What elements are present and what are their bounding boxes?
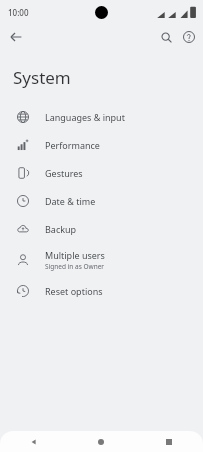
button[interactable]: Search xyxy=(156,27,176,47)
button[interactable]: Multiple users xyxy=(0,243,203,277)
staticText: Languages & input xyxy=(45,111,125,123)
button[interactable]: Backup xyxy=(0,215,203,243)
button[interactable]: Date & time xyxy=(0,187,203,215)
staticText: Signed in as Owner xyxy=(45,262,105,271)
button[interactable]: Help xyxy=(179,27,199,47)
staticText: Reset options xyxy=(45,285,103,297)
staticText: 10:00 xyxy=(8,7,29,18)
staticText: Backup xyxy=(45,223,77,235)
staticText: Performance xyxy=(45,139,100,151)
button[interactable]: Recent apps xyxy=(135,431,203,452)
staticText: Multiple users xyxy=(45,249,105,261)
staticText: System xyxy=(13,66,71,89)
button[interactable]: Reset options xyxy=(0,277,203,305)
staticText: Date & time xyxy=(45,195,96,207)
button[interactable]: Back xyxy=(0,431,67,452)
button[interactable]: Home xyxy=(67,431,135,452)
button[interactable]: Performance xyxy=(0,131,203,159)
staticText: Gestures xyxy=(45,167,83,179)
button[interactable]: Back xyxy=(6,27,26,47)
button[interactable]: Gestures xyxy=(0,159,203,187)
button[interactable]: Languages & input xyxy=(0,103,203,131)
